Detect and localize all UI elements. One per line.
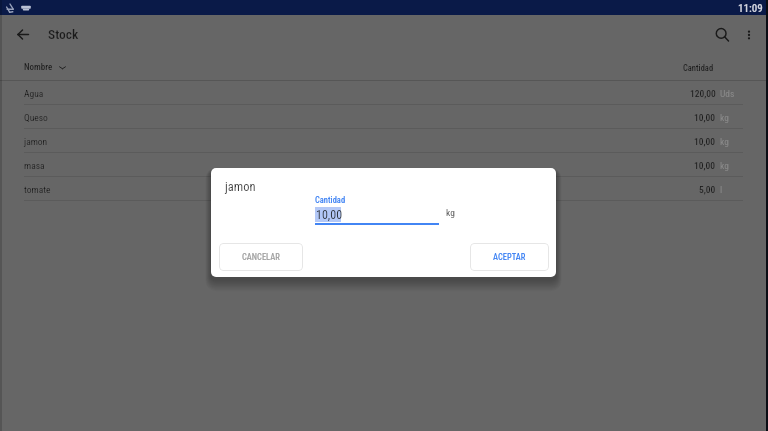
button[interactable]: masa: [0, 153, 768, 177]
staticText: masa: [24, 160, 45, 171]
button[interactable]: CANCELAR: [219, 243, 303, 271]
staticText: Nombre: [24, 62, 53, 73]
button[interactable]: Search: [706, 19, 738, 51]
staticText: CANCELAR: [242, 252, 280, 262]
staticText: 120,00: [690, 88, 716, 99]
staticText: Cantidad: [315, 195, 346, 205]
staticText: Agua: [24, 88, 44, 99]
staticText: 5,00: [699, 184, 716, 195]
staticText: 10,00: [316, 208, 343, 222]
button[interactable]: jamon: [0, 129, 768, 153]
staticText: kg: [720, 160, 729, 171]
staticText: kg: [720, 112, 729, 123]
button[interactable]: Nombre: [24, 62, 66, 73]
button[interactable]: Back: [5, 17, 41, 53]
staticText: 10,00: [694, 160, 716, 171]
staticText: 10,00: [694, 112, 716, 123]
staticText: kg: [446, 207, 455, 218]
staticText: Stock: [48, 26, 79, 42]
button[interactable]: Queso: [0, 105, 768, 129]
button[interactable]: More options: [733, 19, 765, 51]
staticText: l: [720, 184, 723, 195]
staticText: jamon: [24, 136, 48, 147]
staticText: Cantidad: [683, 63, 714, 73]
button[interactable]: Agua: [0, 81, 768, 105]
staticText: Uds: [720, 88, 735, 99]
staticText: Queso: [24, 112, 48, 123]
staticText: tomate: [24, 184, 51, 195]
button[interactable]: ACEPTAR: [470, 243, 549, 271]
button[interactable]: tomate: [0, 177, 768, 201]
staticText: kg: [720, 136, 729, 147]
staticText: 10,00: [694, 136, 716, 147]
staticText: 11:09: [738, 2, 763, 15]
staticText: jamon: [225, 179, 256, 194]
staticText: ACEPTAR: [493, 252, 526, 262]
